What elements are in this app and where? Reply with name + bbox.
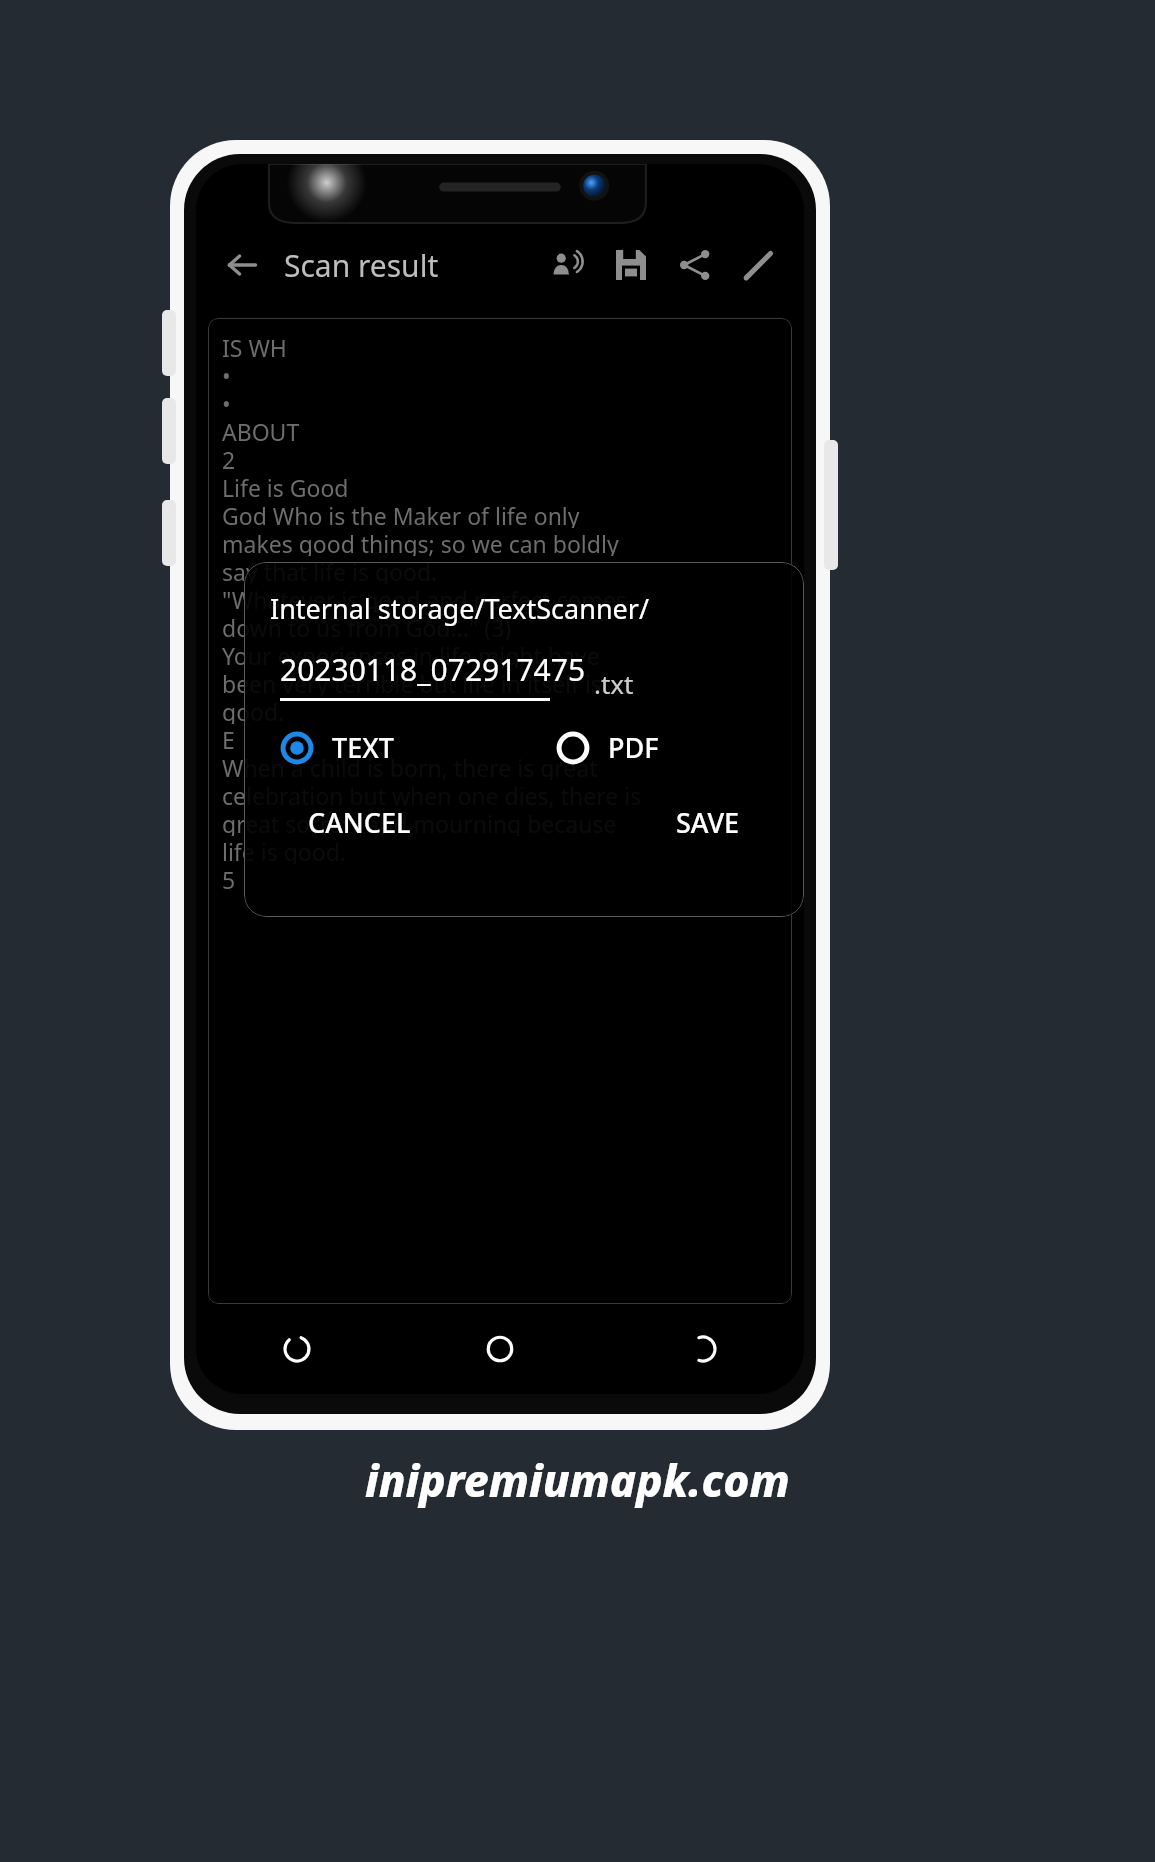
button[interactable]: Share <box>668 238 722 292</box>
button[interactable]: Save <box>604 238 658 292</box>
staticText: down to us from God..." (3) <box>222 612 512 640</box>
button[interactable]: Edit <box>732 238 786 292</box>
staticText: • <box>222 360 231 388</box>
button[interactable]: Home <box>398 1304 601 1394</box>
staticText: inipremiumapk.com <box>365 1450 790 1510</box>
staticText: SAVE <box>676 804 740 841</box>
button[interactable]: TEXT <box>280 729 400 766</box>
staticText: great sorrow and mourning because <box>222 808 617 836</box>
button[interactable]: SAVE <box>664 796 752 849</box>
staticText: 5 <box>222 864 236 892</box>
staticText: Life is Good <box>222 472 349 500</box>
staticText: IS WH <box>222 332 287 360</box>
staticText: celebration but when one dies, there is <box>222 780 642 808</box>
button[interactable]: Back <box>214 237 270 293</box>
staticText: "Whatever is good and perfect comes <box>222 584 627 612</box>
staticText: 2 <box>222 444 236 472</box>
staticText: When a child is born, there is great <box>222 752 598 780</box>
staticText: PDF <box>608 729 659 766</box>
staticText: 20230118_072917475 <box>280 649 586 690</box>
staticText: good. <box>222 696 285 724</box>
staticText: say that life is good. <box>222 556 438 584</box>
button[interactable]: Back <box>601 1304 804 1394</box>
staticText: makes good things; so we can boldly <box>222 528 619 556</box>
button[interactable]: PDF <box>556 729 665 766</box>
staticText: life is good. <box>222 836 346 864</box>
staticText: • <box>222 388 231 416</box>
staticText: ABOUT <box>222 416 300 444</box>
button[interactable]: Read aloud <box>540 238 594 292</box>
staticText: God Who is the Maker of life only <box>222 500 580 528</box>
staticText: E <box>222 724 235 752</box>
staticText: been very terrible but life in itself is <box>222 668 602 696</box>
staticText: .txt <box>594 666 634 701</box>
staticText: TEXT <box>332 729 394 766</box>
button[interactable]: Recents <box>196 1304 398 1394</box>
staticText: CANCEL <box>308 804 411 841</box>
staticText: Scan result <box>284 245 439 286</box>
staticText: Internal storage/TextScanner/ <box>270 590 649 627</box>
button[interactable]: CANCEL <box>296 796 423 849</box>
button[interactable]: IS WH <box>208 318 792 1304</box>
staticText: Your experiences in life might have <box>222 640 600 668</box>
